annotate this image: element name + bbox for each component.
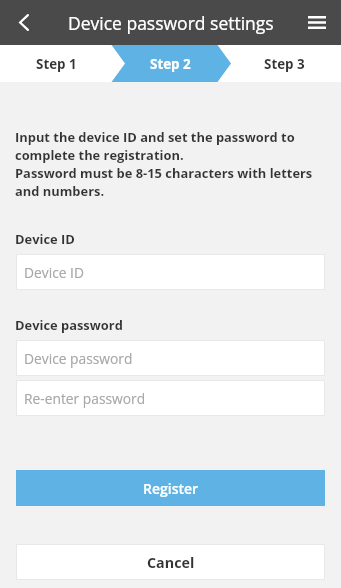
staticText: Device ID bbox=[15, 230, 75, 248]
button[interactable]: Step 1 bbox=[0, 45, 113, 82]
button[interactable]: Register bbox=[16, 470, 325, 506]
button[interactable]: Device ID bbox=[16, 254, 325, 290]
staticText: Step 3 bbox=[264, 55, 305, 73]
button[interactable]: Step 3 bbox=[227, 45, 341, 82]
button[interactable]: Back bbox=[0, 0, 48, 45]
button[interactable]: Re-enter password bbox=[16, 380, 325, 416]
button[interactable]: Menu bbox=[293, 0, 341, 45]
staticText: Re-enter password bbox=[24, 389, 146, 408]
staticText: Step 1 bbox=[36, 55, 77, 73]
staticText: Device password settings bbox=[68, 11, 274, 35]
staticText: Device password bbox=[24, 349, 133, 368]
staticText: Device ID bbox=[24, 263, 84, 282]
button[interactable]: Cancel bbox=[16, 544, 325, 580]
button[interactable]: Device password bbox=[16, 340, 325, 376]
staticText: Cancel bbox=[147, 553, 195, 572]
staticText: Input the device ID and set the password… bbox=[15, 128, 324, 200]
staticText: Register bbox=[143, 479, 199, 498]
staticText: Device password bbox=[15, 316, 123, 334]
staticText: Step 2 bbox=[150, 55, 191, 73]
button[interactable]: Step 2 bbox=[113, 45, 227, 82]
